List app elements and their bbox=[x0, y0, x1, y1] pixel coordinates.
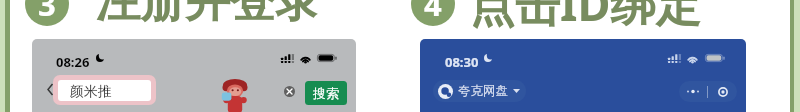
staticText: 08:30 bbox=[445, 53, 479, 71]
staticText: 08:26 bbox=[56, 53, 90, 71]
staticText: 4 bbox=[424, 0, 442, 25]
staticText: 注册并登录 bbox=[95, 0, 320, 30]
button[interactable]: Clear text bbox=[284, 86, 295, 97]
button[interactable]: More options bbox=[679, 81, 707, 102]
staticText: 搜索 bbox=[313, 85, 339, 101]
staticText: 3 bbox=[38, 0, 56, 25]
button[interactable]: 夸克网盘 bbox=[433, 80, 526, 102]
staticText: 夸克网盘 bbox=[458, 83, 508, 99]
button[interactable]: Back bbox=[47, 83, 53, 96]
button[interactable]: 搜索 bbox=[305, 81, 347, 105]
button[interactable]: 颜米推 bbox=[58, 80, 151, 101]
staticText: 颜米推 bbox=[70, 83, 112, 101]
button[interactable]: Account bbox=[708, 81, 737, 102]
staticText: 点击ID绑定 bbox=[470, 0, 701, 34]
